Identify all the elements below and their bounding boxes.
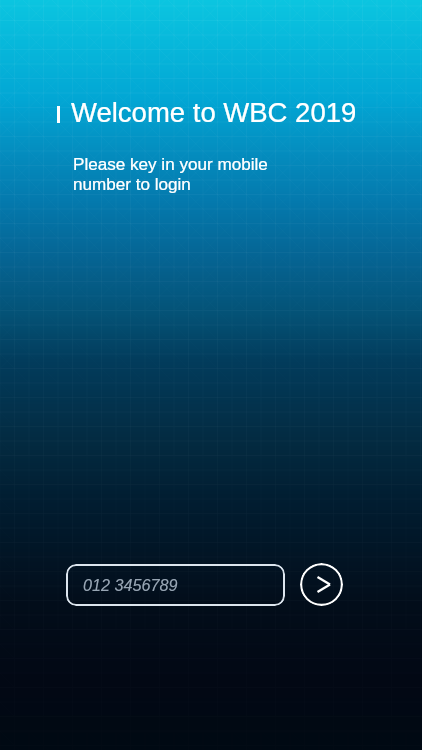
button[interactable]: Mobile number [66, 564, 285, 606]
staticText: number to login [73, 175, 191, 194]
staticText: Welcome to WBC 2019 [71, 97, 357, 128]
staticText: Please key in your mobile [73, 155, 268, 174]
button[interactable]: Continue [300, 563, 343, 606]
staticText: 012 3456789 [83, 576, 178, 594]
